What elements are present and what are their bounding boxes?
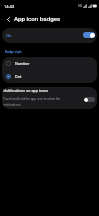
button[interactable]: Number: [2, 57, 97, 70]
button[interactable]: Navigate up: [3, 14, 14, 25]
staticText: Touch and hold the app icon to show the …: [3, 97, 61, 107]
button[interactable]: Dot: [2, 70, 97, 83]
button[interactable]: On: [2, 28, 97, 43]
staticText: Notifications on app icons: [3, 88, 49, 93]
staticText: On: [6, 33, 12, 38]
staticText: 14:44: [4, 4, 14, 9]
staticText: Badge style: [5, 50, 22, 54]
staticText: Dot: [15, 74, 22, 79]
staticText: Number: [15, 61, 30, 66]
staticText: App icon badges: [14, 15, 61, 22]
staticText: 5G: [78, 4, 82, 8]
button[interactable]: Notifications on app icons: [2, 87, 97, 109]
